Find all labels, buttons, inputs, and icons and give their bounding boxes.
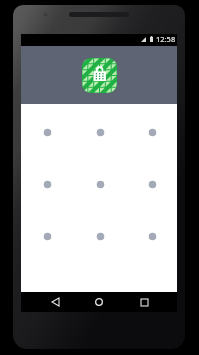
button[interactable]: Pattern dot 6 (126, 158, 178, 210)
button[interactable]: Pattern dot 3 (126, 106, 178, 158)
button[interactable]: Home (88, 292, 110, 312)
button[interactable]: App lock icon (82, 58, 117, 93)
button[interactable]: Pattern dot 1 (21, 106, 73, 158)
button[interactable]: Pattern dot 4 (21, 158, 73, 210)
button[interactable]: Pattern dot 5 (74, 158, 126, 210)
button[interactable]: Pattern dot 9 (126, 210, 178, 262)
button[interactable]: Pattern dot 8 (74, 210, 126, 262)
staticText: 12:58 (156, 34, 176, 44)
button[interactable]: Pattern dot 2 (74, 106, 126, 158)
button[interactable]: Back (44, 292, 66, 312)
button[interactable]: Pattern dot 7 (21, 210, 73, 262)
button[interactable]: Recent apps (133, 292, 155, 312)
